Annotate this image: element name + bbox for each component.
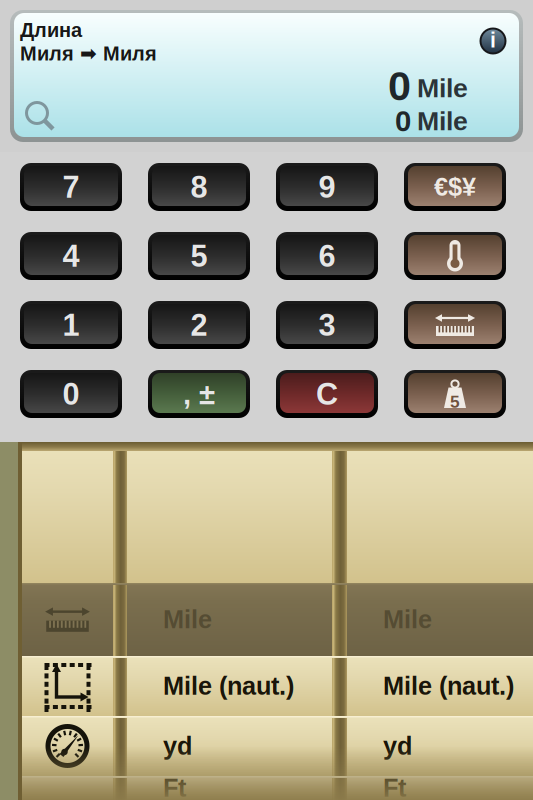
button[interactable]: Mile	[0, 583, 533, 656]
staticText: 7	[62, 170, 79, 204]
button[interactable]: Mile (naut.)	[0, 656, 533, 716]
staticText: Ft	[383, 774, 406, 800]
staticText: 0	[395, 105, 411, 137]
staticText: Mile	[383, 605, 432, 634]
staticText: 3	[318, 308, 335, 342]
staticText: 0	[388, 63, 411, 109]
staticText: Ft	[163, 774, 186, 800]
staticText: Mile	[163, 605, 212, 634]
staticText: Миля ➡ Миля	[20, 42, 157, 65]
staticText: 5	[450, 392, 460, 411]
staticText: Mile (naut.)	[383, 672, 514, 700]
button[interactable]: 4	[20, 232, 122, 280]
button[interactable]: Decimal, sign	[148, 370, 250, 418]
button[interactable]: Clear	[276, 370, 378, 418]
staticText: 5	[190, 239, 207, 273]
staticText: 1	[62, 308, 79, 342]
button[interactable]: 6	[276, 232, 378, 280]
staticText: Длина	[20, 19, 82, 41]
staticText: 8	[190, 170, 207, 204]
button[interactable]: 3	[276, 301, 378, 349]
button[interactable]	[0, 442, 533, 583]
button[interactable]: Temperature	[404, 232, 506, 280]
button[interactable]: 8	[148, 163, 250, 211]
staticText: Mile	[417, 73, 468, 103]
button[interactable]: 7	[20, 163, 122, 211]
button[interactable]: 1	[20, 301, 122, 349]
staticText: yd	[383, 732, 412, 760]
staticText: yd	[163, 732, 192, 760]
button[interactable]: yd	[0, 716, 533, 776]
button[interactable]: 0	[20, 370, 122, 418]
staticText: C	[316, 377, 338, 411]
staticText: 2	[190, 308, 207, 342]
staticText: 4	[62, 239, 79, 273]
staticText: 0	[62, 377, 79, 411]
button[interactable]: Search	[18, 96, 62, 136]
button[interactable]: 5	[148, 232, 250, 280]
button[interactable]: Length	[404, 301, 506, 349]
button[interactable]: Currency	[404, 163, 506, 211]
button[interactable]: Info	[473, 21, 513, 61]
staticText: €$¥	[434, 173, 476, 201]
staticText: Mile	[417, 106, 468, 136]
button[interactable]: 2	[148, 301, 250, 349]
staticText: 9	[318, 170, 335, 204]
button[interactable]: 9	[276, 163, 378, 211]
staticText: 6	[318, 239, 335, 273]
button[interactable]: Ft	[0, 776, 533, 800]
staticText: Mile (naut.)	[163, 672, 294, 700]
staticText: , ±	[183, 378, 215, 410]
button[interactable]: Weight	[404, 370, 506, 418]
staticText: i	[490, 28, 496, 52]
